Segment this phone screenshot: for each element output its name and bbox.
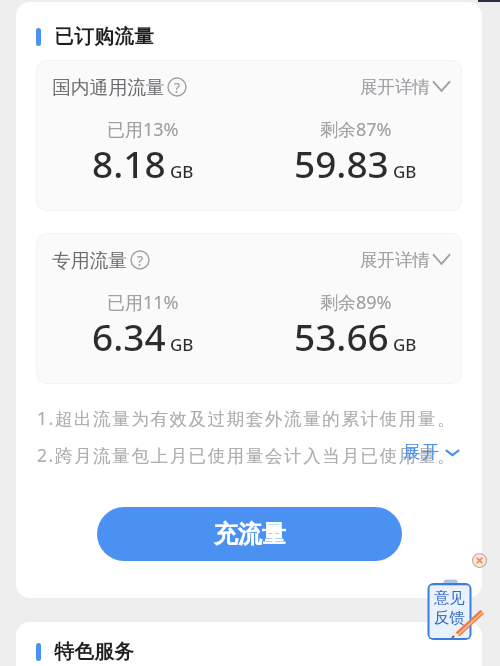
staticText: 2.跨月流量包上月已使用量会计入当月已使用量。: [37, 443, 457, 467]
staticText: GB: [393, 160, 417, 183]
button[interactable]: 关闭: [471, 552, 488, 569]
button[interactable]: 展开: [403, 441, 460, 463]
staticText: 剩余89%: [320, 290, 392, 315]
button[interactable]: 特色服务: [36, 639, 134, 664]
staticText: 8.18: [92, 138, 166, 188]
staticText: 展开详情: [360, 76, 430, 98]
button[interactable]: 展开详情: [360, 76, 451, 98]
staticText: 充流量: [214, 519, 286, 549]
staticText: 意见: [434, 588, 465, 608]
staticText: 剩余87%: [320, 117, 392, 142]
staticText: GB: [393, 333, 417, 356]
staticText: GB: [170, 160, 194, 183]
staticText: 专用流量: [52, 249, 128, 273]
button[interactable]: 意见反馈: [426, 578, 473, 642]
staticText: ?: [137, 251, 144, 270]
staticText: 已用13%: [107, 117, 179, 142]
staticText: ?: [174, 78, 181, 97]
staticText: 已订购流量: [54, 24, 154, 49]
staticText: 59.83: [294, 138, 389, 188]
staticText: GB: [170, 333, 194, 356]
button[interactable]: 充流量: [97, 507, 402, 561]
staticText: 53.66: [294, 311, 389, 361]
staticText: 反馈: [434, 608, 465, 628]
staticText: 国内通用流量: [52, 76, 165, 100]
staticText: 1.超出流量为有效及过期套外流量的累计使用量。: [37, 406, 457, 430]
staticText: 已用11%: [107, 290, 179, 315]
staticText: 展开: [403, 441, 442, 463]
button[interactable]: 展开详情: [360, 249, 451, 271]
staticText: 展开详情: [360, 249, 430, 271]
button[interactable]: 已订购流量: [36, 24, 154, 49]
staticText: 6.34: [92, 311, 166, 361]
staticText: 特色服务: [54, 639, 134, 664]
